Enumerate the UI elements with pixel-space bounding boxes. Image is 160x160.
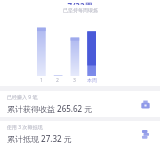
staticText: 7/32周 xyxy=(67,0,93,5)
staticText: 已坚持每周锻炼 xyxy=(63,7,98,13)
other: Redeem xyxy=(137,126,153,142)
staticText: 累计抵现 27.32 元 xyxy=(7,133,72,144)
staticText: 已经赚入 9 笔 xyxy=(7,94,38,101)
staticText: 3 xyxy=(73,77,76,84)
staticText: 累计获得收益 265.62 元 xyxy=(7,103,93,114)
button[interactable]: 已经赚入 9 笔 xyxy=(0,91,160,117)
button[interactable]: 使用 3 次额抵现 xyxy=(0,121,160,147)
other: Earnings xyxy=(137,96,153,112)
staticText: 本周 xyxy=(87,77,97,83)
staticText: 2 xyxy=(56,77,59,84)
staticText: 1 xyxy=(40,77,43,84)
staticText: 使用 3 次额抵现 xyxy=(7,124,43,131)
